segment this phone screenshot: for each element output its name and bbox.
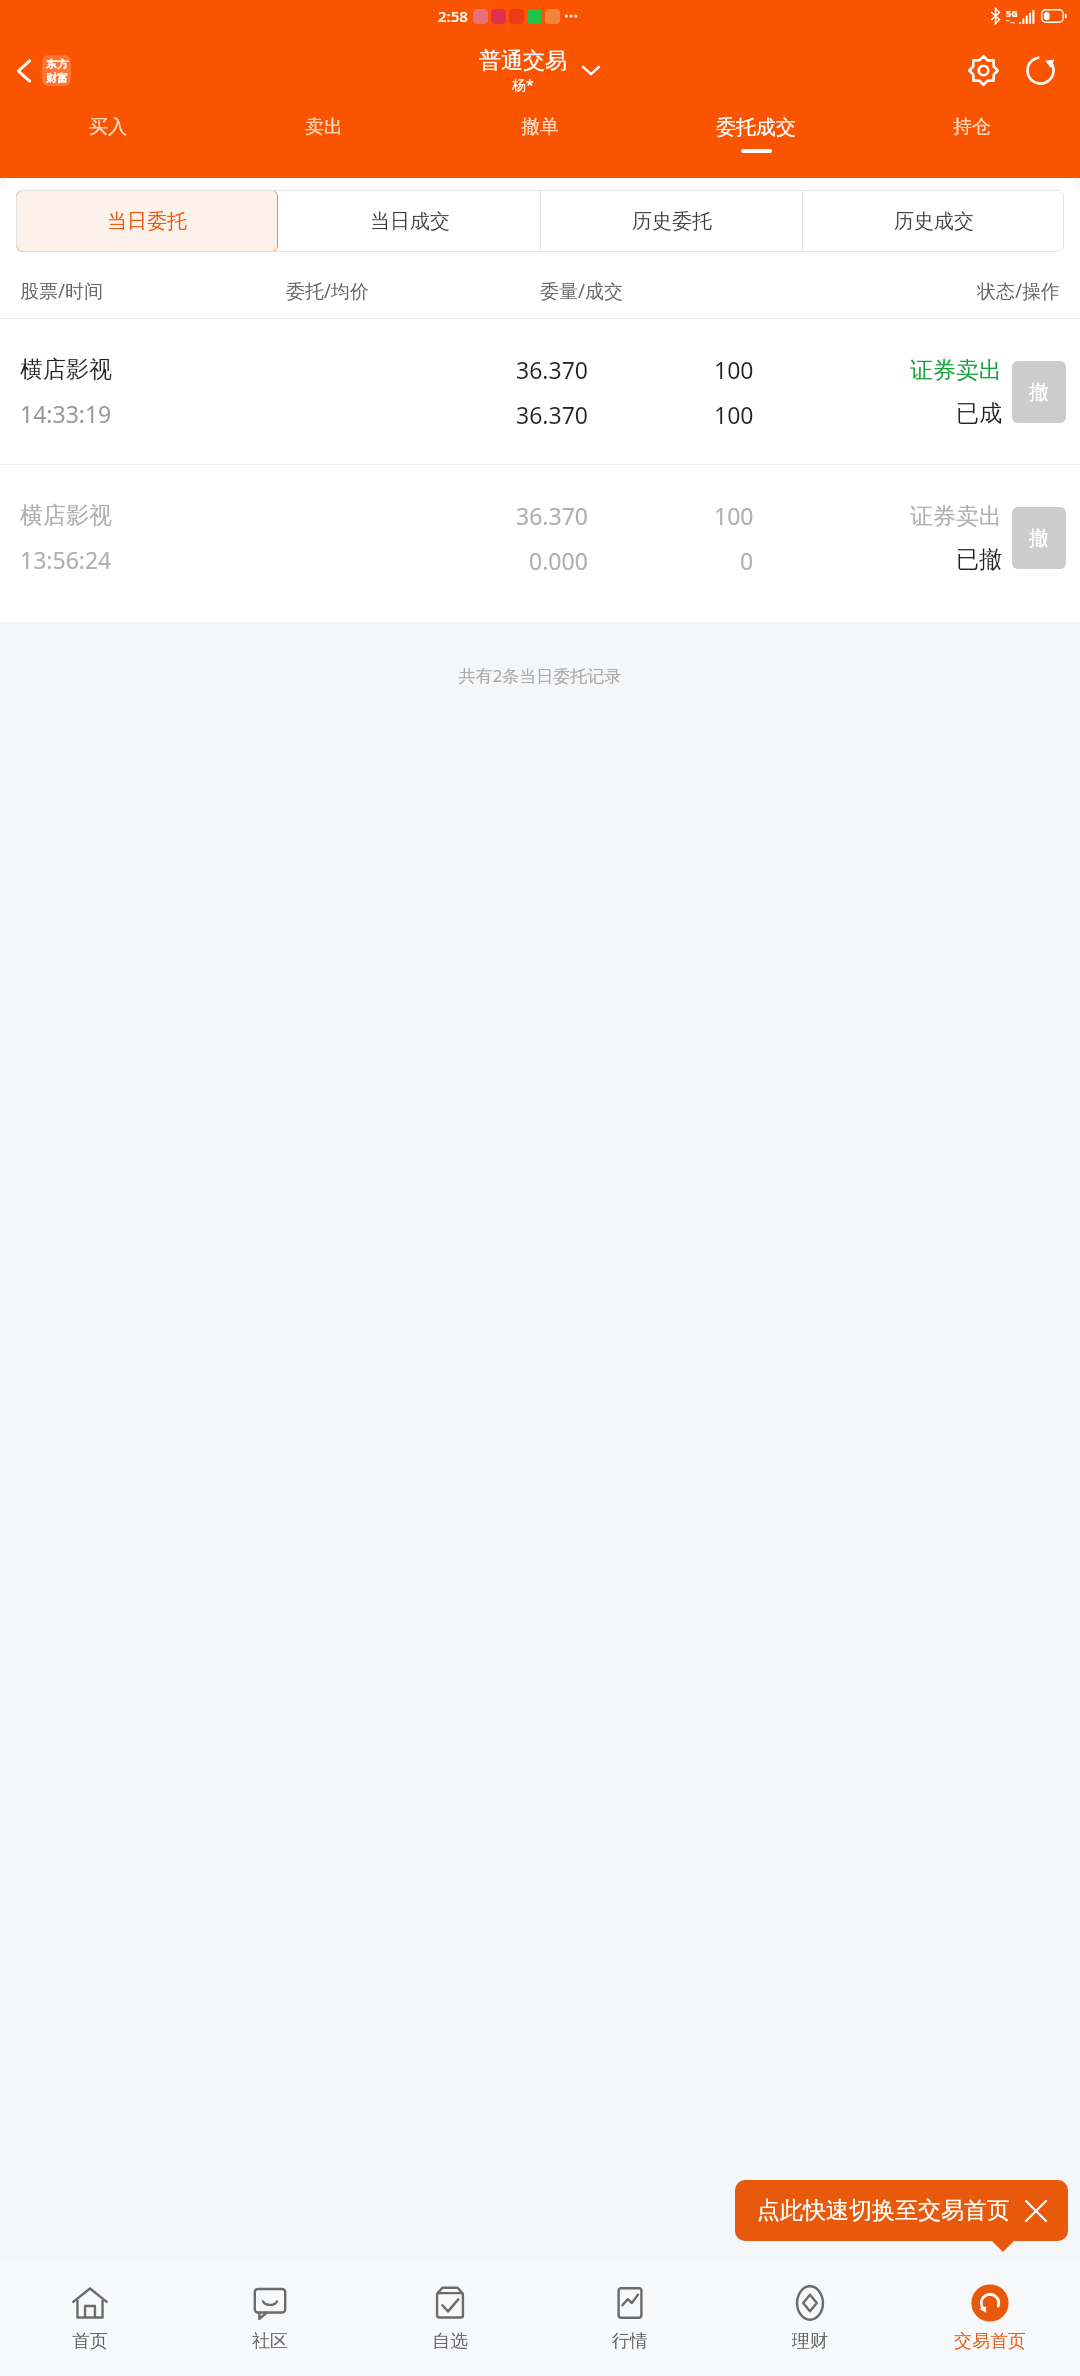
- staticText: 已成: [956, 399, 1002, 428]
- button[interactable]: 设置: [960, 47, 1007, 94]
- staticText: 共有2条当日委托记录: [0, 664, 1080, 687]
- staticText: 撤: [1029, 380, 1049, 405]
- button[interactable]: 理财: [720, 2260, 900, 2376]
- button[interactable]: 关闭: [1026, 2201, 1046, 2221]
- staticText: 36.370: [516, 500, 588, 531]
- button[interactable]: 刷新: [1017, 47, 1064, 94]
- button[interactable]: 自选: [360, 2260, 540, 2376]
- button[interactable]: 返回 东方财富: [8, 47, 77, 94]
- button[interactable]: 历史委托: [541, 190, 802, 252]
- staticText: 交易首页: [954, 2330, 1026, 2353]
- button[interactable]: 点此快速切换至交易首页: [735, 2180, 1068, 2241]
- button[interactable]: 卖出: [216, 109, 432, 169]
- button[interactable]: 普通交易: [479, 47, 601, 94]
- staticText: 杨*: [512, 75, 534, 94]
- staticText: 0.000: [529, 545, 588, 576]
- staticText: 首页: [72, 2330, 108, 2353]
- staticText: 历史成交: [894, 209, 974, 234]
- staticText: 36.370: [516, 399, 588, 430]
- staticText: 股票/时间: [20, 278, 286, 304]
- staticText: 卖出: [305, 115, 343, 139]
- button[interactable]: 当日委托: [16, 190, 278, 252]
- staticText: 证券卖出: [910, 356, 1002, 385]
- button[interactable]: 交易首页: [900, 2260, 1080, 2376]
- staticText: 100: [714, 500, 754, 531]
- button[interactable]: 撤: [1012, 507, 1066, 569]
- staticText: 横店影视: [20, 501, 112, 530]
- button[interactable]: 委托成交: [648, 109, 864, 169]
- staticText: 横店影视: [20, 355, 112, 384]
- staticText: 100: [714, 354, 754, 385]
- button[interactable]: 当日成交: [279, 190, 540, 252]
- staticText: 持仓: [953, 115, 991, 139]
- staticText: 社区: [252, 2330, 288, 2353]
- staticText: 5G: [1006, 7, 1018, 19]
- staticText: 证券卖出: [910, 502, 1002, 531]
- button[interactable]: 横店影视: [0, 465, 1080, 610]
- staticText: 历史委托: [632, 209, 712, 234]
- button[interactable]: 撤单: [432, 109, 648, 169]
- staticText: 2:58: [438, 6, 468, 26]
- staticText: 撤: [1029, 526, 1049, 551]
- button[interactable]: 买入: [0, 109, 216, 169]
- staticText: 行情: [612, 2330, 648, 2353]
- staticText: 100: [714, 399, 754, 430]
- staticText: 普通交易: [479, 47, 567, 75]
- staticText: 东方: [46, 57, 68, 71]
- staticText: 理财: [792, 2330, 828, 2353]
- button[interactable]: 持仓: [864, 109, 1080, 169]
- staticText: 自选: [432, 2330, 468, 2353]
- staticText: 委量/成交: [540, 278, 794, 304]
- staticText: 14:33:19: [20, 398, 112, 429]
- button[interactable]: 历史成交: [803, 190, 1064, 252]
- button[interactable]: 社区: [180, 2260, 360, 2376]
- staticText: 36.370: [516, 354, 588, 385]
- button[interactable]: 横店影视: [0, 319, 1080, 464]
- staticText: 当日委托: [107, 209, 187, 234]
- staticText: 委托成交: [716, 115, 796, 140]
- staticText: 委托/均价: [286, 278, 540, 304]
- staticText: 买入: [89, 115, 127, 139]
- staticText: 当日成交: [370, 209, 450, 234]
- staticText: 状态/操作: [794, 278, 1060, 304]
- staticText: 点此快速切换至交易首页: [757, 2196, 1010, 2225]
- button[interactable]: 撤: [1012, 361, 1066, 423]
- button[interactable]: 行情: [540, 2260, 720, 2376]
- button[interactable]: 首页: [0, 2260, 180, 2376]
- staticText: 13:56:24: [20, 544, 112, 575]
- staticText: 撤单: [521, 115, 559, 139]
- staticText: 财富: [46, 71, 68, 85]
- staticText: 已撤: [956, 545, 1002, 574]
- staticText: 0: [740, 545, 754, 576]
